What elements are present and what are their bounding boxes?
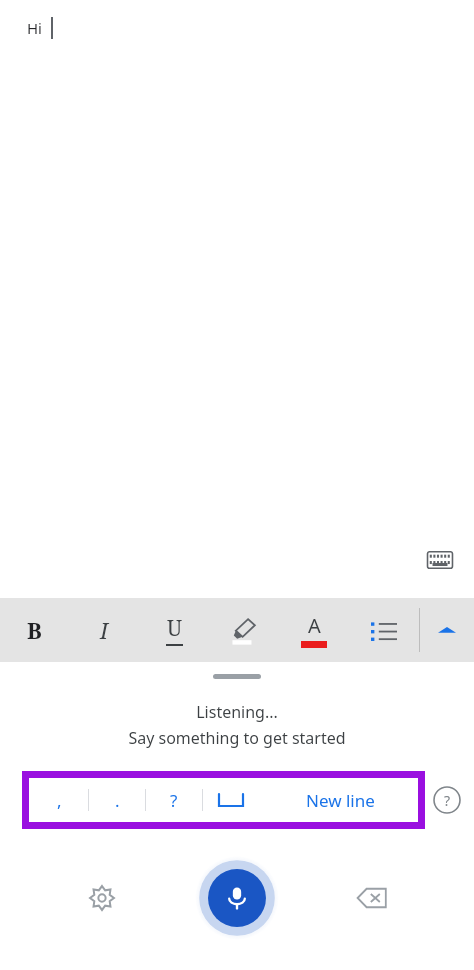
button[interactable]: Settings xyxy=(80,876,124,920)
button[interactable]: . xyxy=(89,780,145,820)
button[interactable]: More options xyxy=(420,598,474,662)
button[interactable]: Underline xyxy=(139,598,209,662)
staticText: U xyxy=(167,614,183,643)
button[interactable]: Microphone xyxy=(195,856,279,940)
staticText: . xyxy=(115,789,120,812)
button[interactable]: Bulleted list xyxy=(349,598,419,662)
button[interactable]: ? xyxy=(146,780,202,820)
button[interactable]: Backspace xyxy=(350,876,394,920)
staticText: I xyxy=(100,615,109,645)
staticText: ? xyxy=(444,791,451,810)
staticText: ? xyxy=(170,789,178,812)
button[interactable]: Italic xyxy=(69,598,139,662)
button[interactable]: , xyxy=(31,780,88,820)
button[interactable]: Bold xyxy=(0,598,69,662)
staticText: Say something to get started xyxy=(128,727,346,749)
button[interactable]: Space xyxy=(203,780,259,820)
staticText: Hi xyxy=(27,18,42,38)
button[interactable]: Help xyxy=(432,785,462,815)
staticText: Listening... xyxy=(196,701,278,723)
button[interactable]: New line xyxy=(264,780,416,820)
button[interactable]: Highlight xyxy=(209,598,279,662)
button[interactable]: Show keyboard xyxy=(416,536,464,584)
staticText: , xyxy=(57,789,62,812)
staticText: B xyxy=(27,615,42,645)
staticText: New line xyxy=(306,789,375,812)
staticText: A xyxy=(308,612,321,639)
button[interactable]: Text color xyxy=(279,598,349,662)
